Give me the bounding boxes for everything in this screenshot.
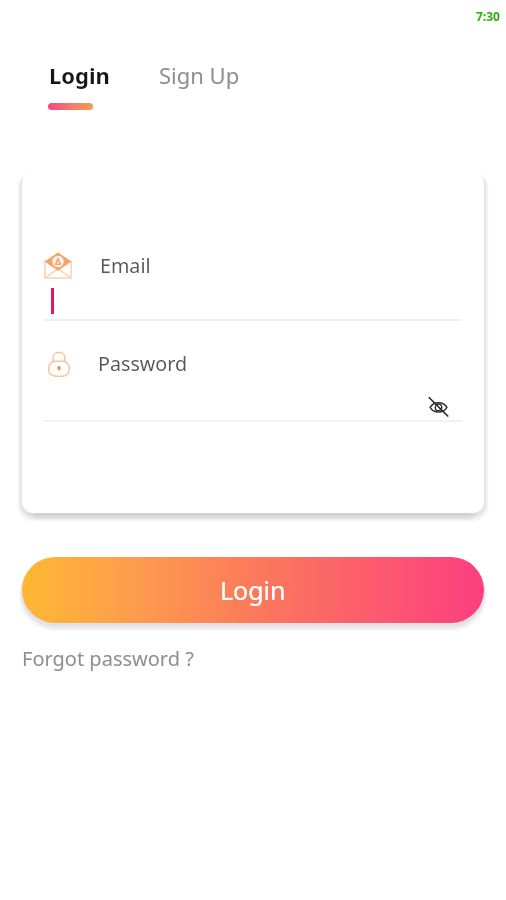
- button[interactable]: Password: [48, 350, 484, 377]
- staticText: Email: [100, 252, 151, 279]
- button[interactable]: Email: [44, 252, 484, 279]
- button[interactable]: Login: [22, 557, 484, 623]
- staticText: Forgot password ?: [22, 645, 194, 672]
- staticText: Password: [98, 350, 188, 377]
- staticText: Login: [49, 60, 110, 90]
- other: Battery status: [476, 8, 500, 24]
- button[interactable]: Show password: [421, 389, 455, 423]
- staticText: Login: [220, 573, 286, 607]
- button[interactable]: Forgot password ?: [22, 645, 194, 672]
- button[interactable]: Login: [49, 60, 110, 110]
- button[interactable]: Sign Up: [159, 60, 240, 90]
- staticText: 7:30: [476, 8, 500, 24]
- staticText: Sign Up: [159, 60, 240, 90]
